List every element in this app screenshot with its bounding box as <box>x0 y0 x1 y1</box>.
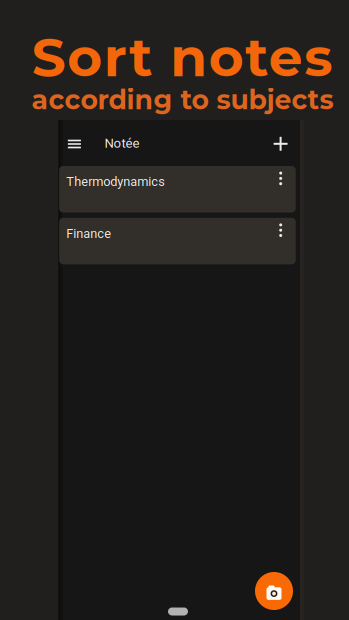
button[interactable]: Scan with camera <box>255 572 293 610</box>
staticText: Notée <box>104 135 139 151</box>
button[interactable]: Thermodynamics <box>59 166 296 212</box>
button[interactable]: Finance <box>59 218 296 264</box>
button[interactable]: Add note <box>268 131 294 157</box>
staticText: Finance <box>66 226 111 241</box>
staticText: Sort notes <box>32 24 332 89</box>
button[interactable]: Open navigation menu <box>62 134 87 154</box>
staticText: according to subjects <box>31 83 333 116</box>
staticText: Thermodynamics <box>66 174 165 189</box>
